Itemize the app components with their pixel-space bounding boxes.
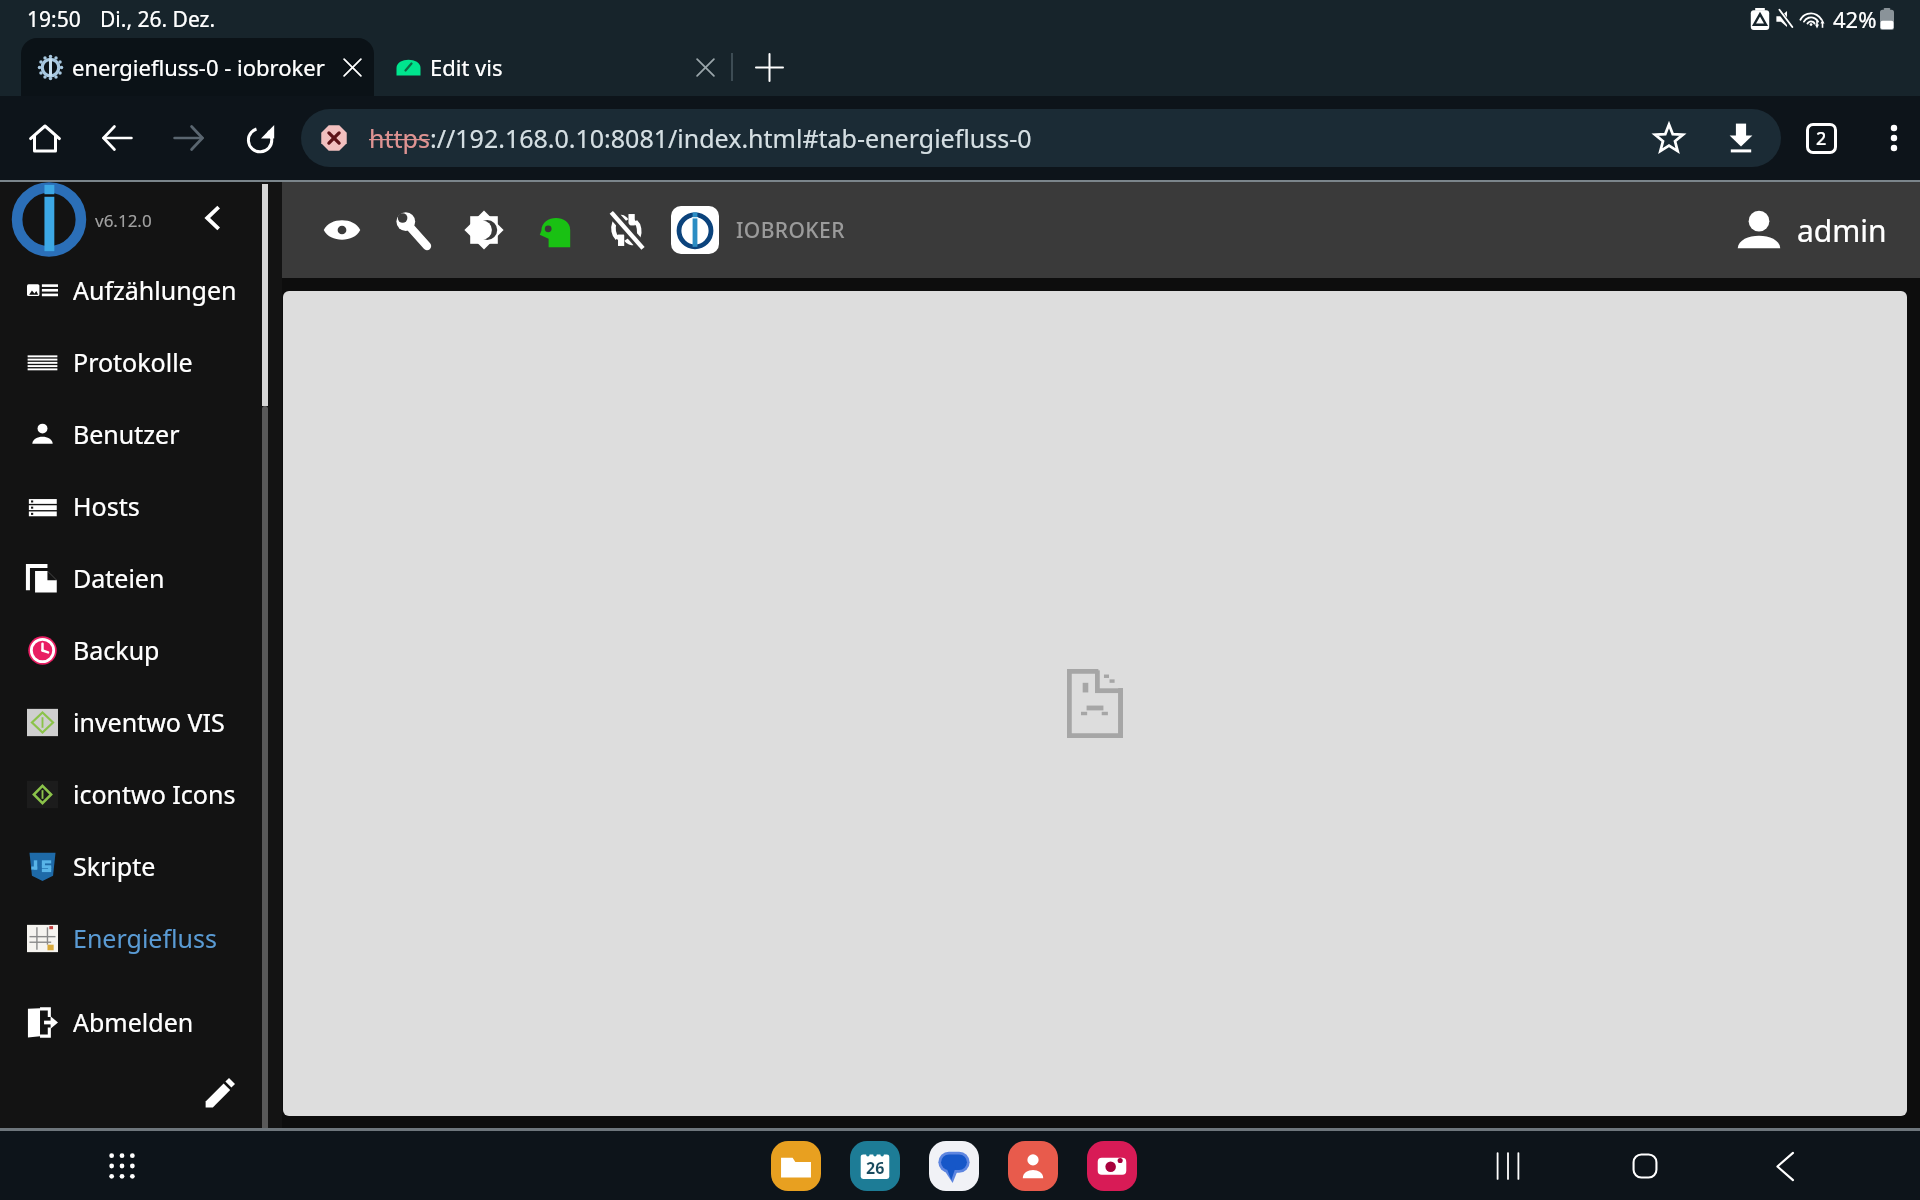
button[interactable]: Backup — [0, 614, 282, 686]
button[interactable]: Recents — [1484, 1142, 1532, 1190]
button[interactable]: Forward — [153, 102, 225, 174]
staticText: Abmelden — [73, 1005, 194, 1039]
staticText: https — [369, 121, 430, 155]
button[interactable]: Sync off — [600, 204, 652, 256]
button[interactable]: Download — [1718, 115, 1764, 161]
button[interactable]: Skripte — [0, 830, 282, 902]
staticText: icontwo Icons — [73, 777, 236, 811]
button[interactable]: Home — [9, 102, 81, 174]
button[interactable]: Files — [771, 1141, 821, 1191]
staticText: inventwo VIS — [73, 705, 225, 739]
staticText: Dateien — [73, 561, 165, 595]
button[interactable]: Contacts — [1008, 1141, 1058, 1191]
button[interactable]: Theme — [458, 204, 510, 256]
staticText: 42% — [1833, 4, 1877, 34]
button[interactable]: Benutzer — [0, 398, 282, 470]
button[interactable]: Apps — [98, 1142, 146, 1190]
button[interactable]: Camera — [1087, 1141, 1137, 1191]
button[interactable]: Dateien — [0, 542, 282, 614]
staticText: admin — [1797, 210, 1887, 251]
button[interactable]: icontwo Icons — [0, 758, 282, 830]
button[interactable]: New tab — [733, 38, 805, 96]
staticText: 2 — [1816, 126, 1827, 151]
staticText: energiefluss-0 - iobroker — [72, 52, 325, 82]
staticText: Benutzer — [73, 417, 180, 451]
staticText: 19:50 — [27, 5, 81, 34]
staticText: v6.12.0 — [95, 209, 152, 232]
button[interactable]: Messages — [929, 1141, 979, 1191]
staticText: Di., 26. Dez. — [100, 5, 216, 34]
button[interactable]: admin — [1721, 196, 1897, 264]
button[interactable]: Expert mode — [529, 204, 581, 256]
button[interactable]: Back — [1761, 1142, 1809, 1190]
button[interactable]: Edit — [196, 1069, 244, 1117]
staticText: Backup — [73, 633, 160, 667]
button[interactable]: Aufzählungen — [0, 254, 282, 326]
button[interactable]: Settings — [387, 204, 439, 256]
button[interactable]: Home — [1621, 1142, 1669, 1190]
staticText: Aufzählungen — [73, 273, 237, 307]
button[interactable]: Calendar — [850, 1141, 900, 1191]
button[interactable]: inventwo VIS — [0, 686, 282, 758]
button[interactable]: energiefluss-0 - iobroker — [21, 38, 374, 96]
button[interactable]: Abmelden — [0, 986, 282, 1058]
button[interactable]: More options — [1870, 114, 1918, 162]
button[interactable]: Close tab — [332, 47, 372, 87]
staticText: Energiefluss — [73, 921, 217, 955]
button[interactable]: https — [301, 109, 1781, 167]
staticText: Protokolle — [73, 345, 193, 379]
button[interactable]: Tabs — [1797, 114, 1845, 162]
staticText: Skripte — [73, 849, 156, 883]
button[interactable]: Edit vis — [374, 38, 725, 96]
button[interactable]: Energiefluss — [0, 902, 282, 974]
staticText: IOBROKER — [736, 216, 845, 245]
button[interactable]: Visibility — [316, 204, 368, 256]
staticText: Hosts — [73, 489, 140, 523]
button[interactable]: Hosts — [0, 470, 282, 542]
button[interactable]: Bookmark — [1646, 115, 1692, 161]
button[interactable]: Protokolle — [0, 326, 282, 398]
button[interactable]: Reload — [225, 102, 297, 174]
staticText: 26 — [866, 1157, 885, 1179]
staticText: Edit vis — [430, 52, 503, 82]
button[interactable]: Back — [81, 102, 153, 174]
button[interactable]: Close tab — [685, 47, 725, 87]
staticText: ://192.168.0.10:8081/index.html#tab-ener… — [430, 121, 1032, 155]
button[interactable]: Collapse menu — [190, 196, 234, 240]
